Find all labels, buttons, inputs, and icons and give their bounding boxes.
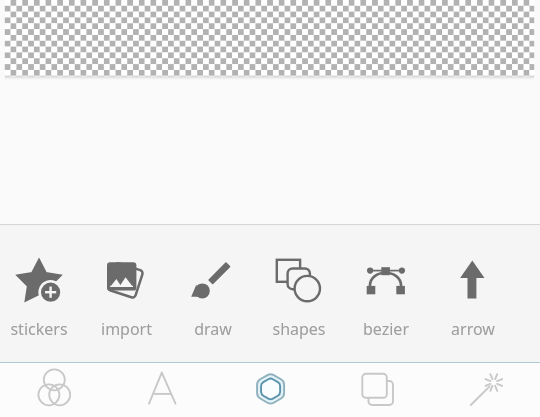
button[interactable]: Shapes [216, 362, 324, 417]
button[interactable]: Text [108, 362, 216, 417]
button[interactable]: arrow [429, 224, 516, 362]
staticText: shapes [272, 318, 326, 340]
staticText: bezier [363, 318, 409, 340]
button[interactable]: stickers [0, 224, 82, 362]
staticText: stickers [10, 318, 68, 340]
staticText: import [101, 318, 152, 340]
staticText: draw [194, 318, 232, 340]
button[interactable]: Colors [0, 362, 108, 417]
button[interactable]: shapes [255, 224, 342, 362]
button[interactable]: Layers [324, 362, 432, 417]
staticText: arrow [451, 318, 495, 340]
button[interactable]: Effects [432, 362, 540, 417]
button[interactable]: bezier [342, 224, 429, 362]
button[interactable]: draw [169, 224, 256, 362]
button[interactable]: import [82, 224, 169, 362]
